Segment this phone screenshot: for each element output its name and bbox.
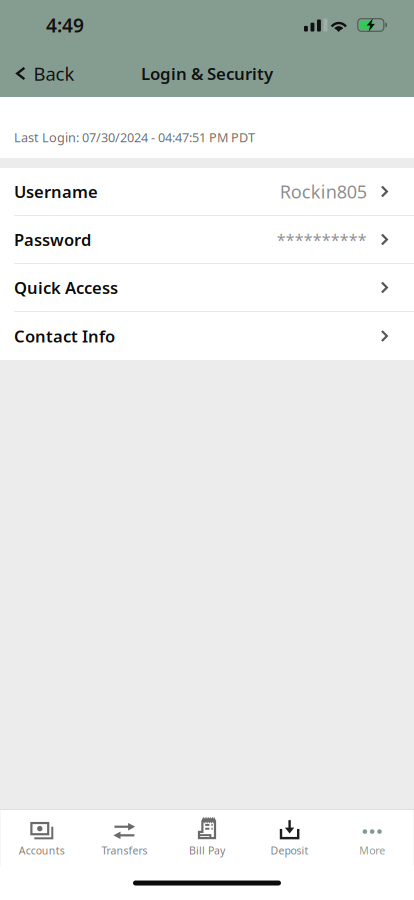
staticText: Bill Pay [189,843,225,858]
staticText: Deposit [271,843,309,858]
staticText: Login & Security [141,62,273,85]
button[interactable]: Accounts [0,814,83,862]
staticText: ********** [277,229,367,250]
staticText: Quick Access [14,276,118,299]
staticText: More [359,843,385,858]
staticText: Contact Info [14,325,115,347]
staticText: Accounts [19,843,65,858]
button[interactable]: Username [0,168,414,216]
staticText: Password [14,228,91,251]
staticText: Last Login: 07/30/2024 - 04:47:51 PM PDT [14,129,255,146]
button[interactable]: Deposit [248,814,331,862]
button[interactable]: Transfers [83,814,166,862]
staticText: Transfers [101,843,147,858]
button[interactable]: More [331,814,413,862]
button[interactable]: Bill Pay [166,814,248,862]
staticText: Back [34,61,75,86]
button[interactable]: Contact Info [0,312,414,360]
button[interactable]: Password [0,216,414,264]
staticText: Rockin805 [280,179,367,204]
button[interactable]: Back [0,50,87,97]
staticText: 4:49 [46,12,84,38]
button[interactable]: Quick Access [0,264,414,312]
staticText: Username [14,180,98,203]
